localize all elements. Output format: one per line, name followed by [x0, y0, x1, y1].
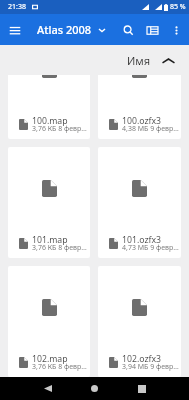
- button[interactable]: 100.ozfx3: [98, 75, 181, 139]
- staticText: Atlas 2008: [37, 22, 92, 37]
- button[interactable]: Recents: [130, 377, 153, 400]
- staticText: 4,38 МБ 9 февр…: [122, 124, 179, 134]
- button[interactable]: 102.map: [8, 266, 90, 377]
- button[interactable]: Search: [116, 18, 140, 42]
- staticText: 4,73 МБ 9 февр…: [122, 243, 179, 253]
- button[interactable]: Back: [36, 377, 59, 400]
- button[interactable]: 102.ozfx3: [98, 266, 181, 377]
- staticText: 85 %: [170, 2, 186, 12]
- button[interactable]: Menu: [0, 15, 30, 45]
- button[interactable]: 100.map: [8, 75, 90, 139]
- staticText: 3,76 КБ 8 февр…: [32, 124, 87, 134]
- button[interactable]: More options: [164, 18, 188, 42]
- staticText: 102.map: [32, 353, 68, 365]
- staticText: 101.ozfx3: [122, 234, 162, 246]
- button[interactable]: 101.ozfx3: [98, 147, 181, 258]
- button[interactable]: Atlas 2008: [30, 22, 110, 37]
- staticText: 21:38: [8, 2, 26, 12]
- staticText: 101.map: [32, 234, 68, 246]
- staticText: 3,76 КБ 8 февр…: [32, 243, 87, 253]
- staticText: 100.ozfx3: [122, 115, 162, 127]
- staticText: 3,94 МБ 9 февр…: [122, 362, 179, 372]
- button[interactable]: 101.map: [8, 147, 90, 258]
- staticText: 102.ozfx3: [122, 353, 162, 365]
- staticText: 100.map: [32, 115, 68, 127]
- staticText: Имя: [127, 53, 151, 68]
- button[interactable]: Home: [83, 377, 106, 400]
- button[interactable]: View mode: [140, 18, 164, 42]
- staticText: 3,76 КБ 8 февр…: [32, 362, 87, 372]
- button[interactable]: Имя: [123, 50, 179, 71]
